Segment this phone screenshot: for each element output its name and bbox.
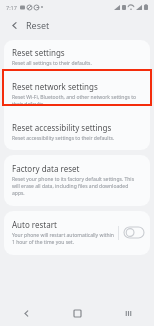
staticText: Reset xyxy=(26,19,50,31)
button[interactable]: Recents xyxy=(103,300,154,326)
button[interactable]: Reset settings xyxy=(4,40,150,74)
button[interactable]: Back xyxy=(8,19,20,31)
staticText: Reset network settings xyxy=(12,81,98,92)
button[interactable]: Back xyxy=(0,300,52,326)
button[interactable]: Reset accessibility settings xyxy=(4,115,150,150)
staticText: Factory data reset xyxy=(12,163,80,174)
staticText: Reset accessibility settings xyxy=(12,122,112,133)
staticText: Reset Wi-Fi, Bluetooth, and other networ… xyxy=(12,94,140,108)
staticText: Reset accessibility settings to their de… xyxy=(12,135,115,142)
button[interactable]: Auto restart xyxy=(4,211,150,255)
staticText: Reset all settings to their defaults. xyxy=(12,60,92,67)
button[interactable]: Reset network settings xyxy=(4,74,150,115)
staticText: Auto restart xyxy=(12,219,57,230)
staticText: Reset your phone to its factory default … xyxy=(12,176,140,197)
button[interactable]: Factory data reset xyxy=(4,155,150,206)
button[interactable]: Home xyxy=(52,300,103,326)
button[interactable]: Auto restart toggle xyxy=(124,227,144,238)
staticText: Reset settings xyxy=(12,47,65,58)
staticText: Your phone will restart automatically wi… xyxy=(12,232,114,246)
staticText: 7:17 xyxy=(6,4,17,11)
